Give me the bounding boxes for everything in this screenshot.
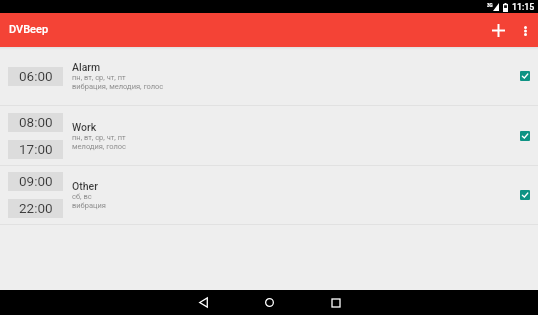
- staticText: вибрация: [72, 201, 106, 210]
- button[interactable]: Home: [254, 290, 284, 315]
- button[interactable]: 09:00: [0, 166, 538, 225]
- button[interactable]: Recent apps: [321, 290, 351, 315]
- button[interactable]: Alarm enabled: [512, 123, 538, 149]
- staticText: 06:00: [19, 68, 53, 84]
- button[interactable]: Alarm enabled: [512, 63, 538, 89]
- staticText: пн, вт, ср, чт, пт: [72, 73, 126, 82]
- button[interactable]: More options: [513, 18, 538, 43]
- staticText: 11:15: [512, 2, 535, 12]
- button[interactable]: Add alarm: [483, 15, 513, 45]
- staticText: Work: [72, 121, 97, 133]
- staticText: 22:00: [19, 200, 53, 216]
- staticText: DVBeep: [9, 23, 49, 36]
- staticText: мелодия, голос: [72, 142, 127, 151]
- staticText: вибрация, мелодия, голос: [72, 82, 164, 91]
- staticText: 08:00: [19, 114, 53, 130]
- staticText: пн, вт, ср, чт, пт: [72, 133, 126, 142]
- button[interactable]: 06:00: [0, 47, 538, 106]
- button[interactable]: 08:00: [0, 106, 538, 166]
- staticText: Other: [72, 180, 98, 192]
- staticText: Alarm: [72, 61, 101, 73]
- staticText: 3G: [487, 3, 493, 8]
- button[interactable]: Alarm enabled: [512, 182, 538, 208]
- staticText: 09:00: [19, 173, 53, 189]
- button[interactable]: Back: [188, 290, 218, 315]
- staticText: сб, вс: [72, 192, 92, 201]
- staticText: 17:00: [19, 141, 53, 157]
